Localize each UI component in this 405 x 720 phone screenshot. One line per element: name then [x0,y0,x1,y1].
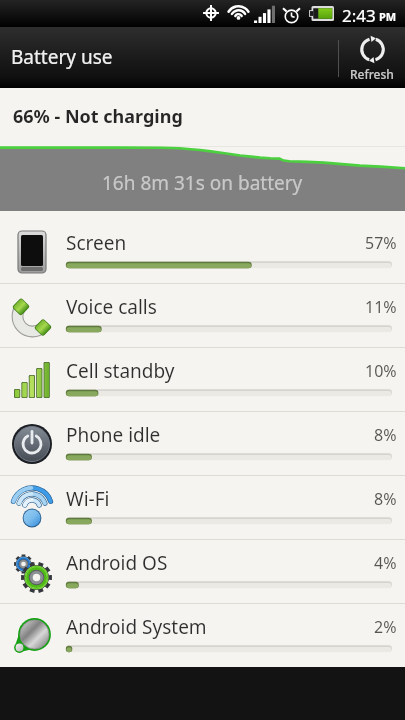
button[interactable]: Phone idle [0,412,405,475]
staticText: 16h 8m 31s on battery [102,170,303,196]
staticText: Android OS [66,550,168,576]
button[interactable]: Android System [0,604,405,667]
staticText: 2:43 [342,4,376,27]
staticText: 8% [374,424,397,446]
staticText: 11% [365,296,397,318]
staticText: Wi-Fi [66,486,110,512]
staticText: Refresh [350,66,394,82]
staticText: Android System [66,614,207,640]
staticText: Battery use [11,44,113,70]
button[interactable]: Android OS [0,540,405,603]
staticText: 66% - Not charging [13,104,183,129]
button[interactable]: Voice calls [0,284,405,347]
button[interactable]: Cell standby [0,348,405,411]
staticText: 10% [365,360,397,382]
staticText: 57% [365,232,397,254]
staticText: Voice calls [66,294,157,320]
staticText: Cell standby [66,358,175,384]
staticText: Phone idle [66,422,161,448]
button[interactable]: Wi-Fi [0,476,405,539]
staticText: Screen [66,230,127,256]
button[interactable]: Refresh [339,27,405,88]
staticText: 4% [374,552,397,574]
button[interactable]: Screen [0,220,405,283]
staticText: 2% [374,616,397,638]
staticText: 8% [374,488,397,510]
staticText: PM [379,9,397,24]
